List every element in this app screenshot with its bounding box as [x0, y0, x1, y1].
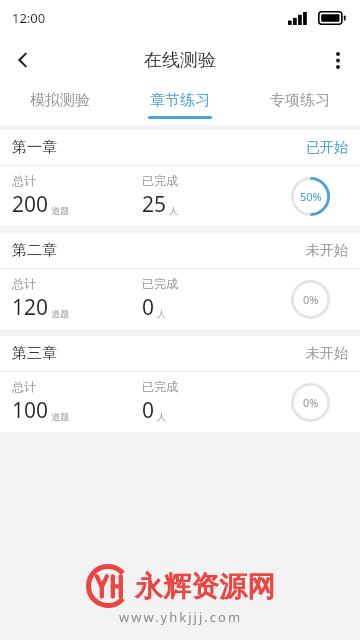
staticText: 道题 [51, 411, 69, 422]
staticText: 200 [12, 190, 49, 219]
button[interactable]: 第一章 [0, 130, 360, 226]
button[interactable]: 模拟测验 [0, 84, 120, 125]
staticText: 0% [303, 292, 319, 307]
staticText: 总计 [12, 379, 36, 394]
staticText: 永辉资源网 [135, 569, 275, 604]
staticText: 模拟测验 [30, 91, 90, 110]
staticText: 道题 [51, 205, 69, 216]
staticText: 已完成 [142, 379, 178, 394]
button[interactable]: 第二章 [0, 233, 360, 329]
staticText: www.yhkjjj.com [119, 608, 243, 626]
staticText: 道题 [51, 308, 69, 319]
staticText: 50% [300, 189, 322, 204]
button[interactable]: Back [0, 37, 46, 83]
staticText: 已开始 [306, 139, 348, 157]
staticText: 0% [303, 395, 319, 410]
staticText: 120 [12, 293, 49, 322]
staticText: 0 [142, 293, 155, 322]
staticText: 第二章 [12, 241, 57, 260]
staticText: 人 [169, 205, 178, 216]
staticText: 专项练习 [270, 91, 330, 110]
staticText: 100 [12, 396, 49, 425]
staticText: 第三章 [12, 344, 57, 363]
staticText: 总计 [12, 276, 36, 291]
staticText: 已完成 [142, 276, 178, 291]
staticText: 人 [157, 308, 166, 319]
staticText: 总计 [12, 173, 36, 188]
button[interactable]: 第三章 [0, 336, 360, 432]
button[interactable]: More options [316, 38, 360, 82]
staticText: 人 [157, 411, 166, 422]
staticText: 0 [142, 396, 155, 425]
staticText: 未开始 [306, 242, 348, 260]
staticText: 已完成 [142, 173, 178, 188]
staticText: 章节练习 [150, 91, 210, 110]
staticText: 12:00 [12, 9, 46, 27]
staticText: 未开始 [306, 345, 348, 363]
staticText: 第一章 [12, 138, 57, 157]
button[interactable]: 专项练习 [240, 84, 360, 125]
staticText: 25 [142, 190, 167, 219]
button[interactable]: 章节练习 [120, 84, 240, 125]
staticText: 在线测验 [144, 49, 216, 72]
